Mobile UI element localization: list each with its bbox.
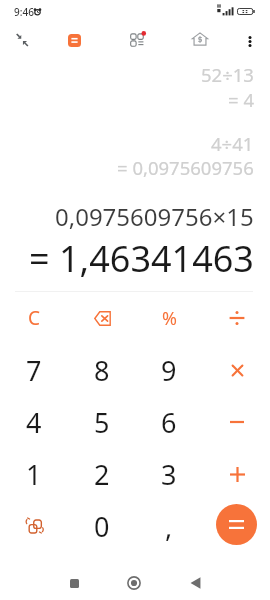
staticText: 3 — [161, 456, 177, 493]
staticText: , — [165, 508, 173, 545]
button[interactable]: 3 — [135, 448, 203, 500]
button[interactable]: 4 — [0, 396, 68, 448]
staticText: 4÷41 — [211, 131, 254, 156]
button[interactable]: 6 — [135, 396, 203, 448]
button[interactable]: 5 — [68, 396, 136, 448]
button[interactable]: Multiply — [203, 344, 270, 396]
button[interactable]: 2 — [68, 448, 136, 500]
staticText: = 4 — [228, 87, 254, 112]
button[interactable]: 9 — [135, 344, 203, 396]
staticText: 0,0975609756×15 — [55, 200, 254, 233]
staticText: 52÷13 — [201, 62, 254, 87]
staticText: % — [162, 306, 177, 331]
button[interactable]: Recent apps — [50, 562, 98, 600]
staticText: 5 — [94, 404, 110, 441]
button[interactable]: Unit converter — [0, 500, 68, 552]
button[interactable]: Shrink — [0, 18, 44, 62]
staticText: 9:46 — [14, 5, 34, 19]
staticText: 1 — [26, 456, 42, 493]
staticText: 4 — [26, 404, 42, 441]
staticText: = 0,0975609756 — [117, 155, 254, 180]
button[interactable]: Calculator — [52, 18, 96, 62]
button[interactable]: 0 — [68, 500, 136, 552]
button[interactable]: Clear — [0, 292, 68, 344]
staticText: = 1,46341463 — [29, 234, 254, 283]
button[interactable]: , — [135, 500, 203, 552]
button[interactable]: Converters — [116, 17, 160, 61]
button[interactable]: Mortgage — [178, 17, 222, 61]
button[interactable]: Plus — [203, 448, 270, 500]
button[interactable]: Home — [110, 562, 158, 600]
button[interactable]: 1 — [0, 448, 68, 500]
staticText: 7 — [26, 352, 42, 389]
button[interactable]: Back — [171, 562, 219, 600]
button[interactable]: Equals — [216, 504, 257, 545]
button[interactable]: 8 — [68, 344, 136, 396]
button[interactable]: 7 — [0, 344, 68, 396]
staticText: 2 — [94, 456, 110, 493]
button[interactable]: Backspace — [68, 292, 136, 344]
staticText: 0 — [94, 508, 110, 545]
staticText: 8 — [94, 352, 110, 389]
button[interactable]: Percent — [135, 292, 203, 344]
staticText: C — [28, 305, 41, 331]
staticText: 6 — [161, 404, 177, 441]
button[interactable]: Divide — [203, 292, 270, 344]
staticText: 9 — [161, 352, 177, 389]
button[interactable]: Minus — [203, 396, 270, 448]
button[interactable]: More options — [233, 24, 267, 58]
